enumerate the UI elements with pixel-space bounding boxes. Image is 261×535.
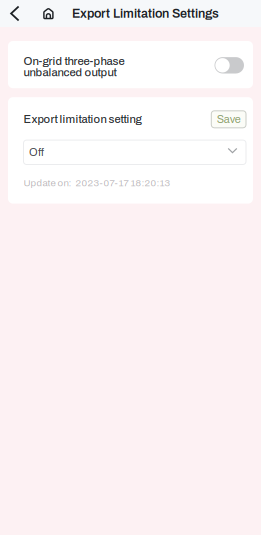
staticText: Export limitation setting	[23, 113, 141, 125]
button[interactable]: On-grid three-phase unbalanced output	[214, 56, 244, 73]
button[interactable]: Save	[211, 111, 246, 128]
button[interactable]: Back	[5, 0, 24, 27]
staticText: Off	[29, 146, 44, 158]
button[interactable]: Home	[36, 0, 60, 27]
staticText: On-grid three-phase	[23, 55, 124, 67]
staticText: Update on: 2023-07-17 18:20:13	[23, 178, 170, 188]
button[interactable]: Off	[23, 140, 246, 164]
staticText: unbalanced output	[23, 66, 116, 79]
staticText: Export Limitation Settings	[72, 7, 219, 20]
staticText: Save	[217, 113, 241, 125]
